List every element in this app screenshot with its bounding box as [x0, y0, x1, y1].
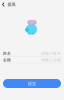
button[interactable]: 提交 [3, 79, 61, 88]
staticText: 提现 [7, 2, 15, 7]
staticText: 提交 [28, 81, 36, 86]
staticText: 请输入姓名 [41, 51, 61, 56]
staticText: 姓名 [3, 51, 11, 56]
button[interactable]: Back [2, 0, 5, 8]
staticText: 金额 [3, 57, 11, 62]
staticText: 请输入金额 [41, 57, 61, 62]
